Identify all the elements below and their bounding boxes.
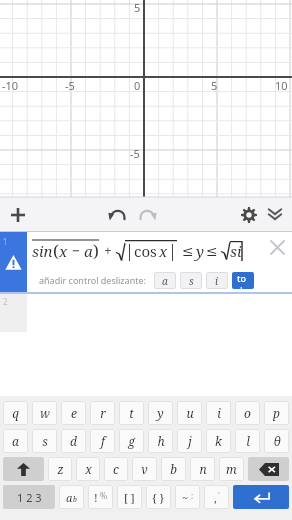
button[interactable]: n xyxy=(190,457,215,481)
button[interactable]: Close xyxy=(262,232,292,292)
staticText: -5 xyxy=(130,146,140,161)
staticText: 5 xyxy=(134,0,141,15)
button[interactable]: h xyxy=(148,429,173,453)
button[interactable]: Brackets xyxy=(117,485,142,509)
button[interactable]: c xyxy=(104,457,128,481)
staticText: s xyxy=(189,274,194,288)
button[interactable]: j xyxy=(177,429,202,453)
button[interactable]: x xyxy=(76,457,100,481)
button[interactable]: u xyxy=(177,401,202,425)
button[interactable]: Collapse xyxy=(263,203,287,227)
button[interactable]: d xyxy=(61,429,86,453)
staticText: | xyxy=(125,240,134,262)
button[interactable]: w xyxy=(32,401,57,425)
staticText: x xyxy=(159,241,168,261)
staticText: m xyxy=(226,461,237,477)
button[interactable]: q xyxy=(3,401,28,425)
staticText: { } xyxy=(152,490,165,505)
staticText: ) xyxy=(93,239,99,262)
button[interactable]: e xyxy=(61,401,86,425)
button[interactable]: Percent xyxy=(88,485,113,509)
staticText: e xyxy=(71,405,77,421)
staticText: -10 xyxy=(2,78,19,93)
staticText: si xyxy=(230,241,242,261)
button[interactable]: todo xyxy=(232,272,254,289)
staticText: 1 xyxy=(3,236,8,247)
button[interactable]: Add expression xyxy=(6,203,30,227)
staticText: 1 2 3 xyxy=(17,490,42,505)
staticText: [ ] xyxy=(124,490,135,505)
staticText: b xyxy=(73,495,77,505)
button[interactable]: Enter xyxy=(233,485,289,509)
staticText: θ xyxy=(273,433,281,449)
staticText: 2 xyxy=(3,296,8,307)
staticText: u xyxy=(186,405,194,421)
staticText: x xyxy=(85,461,92,477)
staticText: a xyxy=(66,490,73,505)
button[interactable]: t xyxy=(119,401,144,425)
button[interactable]: Shift xyxy=(3,457,44,481)
button[interactable]: f xyxy=(90,429,115,453)
button[interactable]: l xyxy=(235,429,260,453)
staticText: d xyxy=(70,433,77,449)
staticText: c xyxy=(113,461,119,477)
staticText: 5 xyxy=(211,78,218,93)
staticText: h xyxy=(157,433,165,449)
staticText: s xyxy=(42,433,48,449)
button[interactable]: Undo xyxy=(105,203,129,227)
staticText: j xyxy=(188,433,192,449)
button[interactable]: Subscript xyxy=(59,485,84,509)
staticText: r xyxy=(100,405,106,421)
staticText: a xyxy=(84,241,93,261)
staticText: a xyxy=(162,274,168,288)
staticText: − xyxy=(68,241,84,260)
staticText: v xyxy=(141,461,148,477)
staticText: w xyxy=(40,405,50,421)
staticText: o xyxy=(244,405,251,421)
button[interactable]: Comma xyxy=(204,485,229,509)
button[interactable]: Backspace xyxy=(248,457,289,481)
staticText: todo xyxy=(237,272,249,289)
button[interactable]: k xyxy=(206,429,231,453)
button[interactable]: s xyxy=(32,429,57,453)
staticText: ≤ xyxy=(182,243,194,259)
button[interactable]: Braces xyxy=(146,485,171,509)
staticText: b xyxy=(170,461,177,477)
staticText: y xyxy=(157,405,164,421)
staticText: l xyxy=(246,433,250,449)
button[interactable]: y xyxy=(148,401,173,425)
button[interactable]: v xyxy=(132,457,157,481)
staticText: a xyxy=(12,433,19,449)
button[interactable]: Redo xyxy=(136,203,160,227)
staticText: cos xyxy=(134,241,157,261)
button[interactable]: o xyxy=(235,401,260,425)
staticText: x xyxy=(59,241,68,261)
button[interactable]: 1 xyxy=(0,232,292,292)
staticText: : xyxy=(191,490,194,501)
staticText: -5 xyxy=(65,78,75,93)
button[interactable]: r xyxy=(90,401,115,425)
staticText: 10 xyxy=(275,78,288,93)
button[interactable]: Tilde xyxy=(175,485,200,509)
button[interactable]: z xyxy=(48,457,72,481)
staticText: t xyxy=(129,405,134,421)
button[interactable]: θ xyxy=(264,429,289,453)
button[interactable]: Settings xyxy=(237,203,261,227)
staticText: i xyxy=(215,274,219,288)
button[interactable]: s xyxy=(180,272,202,289)
staticText: sin xyxy=(32,241,53,261)
button[interactable]: m xyxy=(219,457,244,481)
button[interactable]: g xyxy=(119,429,144,453)
button[interactable]: a xyxy=(3,429,28,453)
staticText: ( xyxy=(53,239,59,262)
staticText: % xyxy=(100,490,108,501)
button[interactable]: p xyxy=(264,401,289,425)
staticText: q xyxy=(12,405,19,421)
button[interactable]: Numbers xyxy=(3,485,55,509)
staticText: y xyxy=(196,241,204,261)
button[interactable]: i xyxy=(206,401,231,425)
button[interactable]: i xyxy=(206,272,228,289)
button[interactable]: b xyxy=(161,457,186,481)
staticText: n xyxy=(199,461,207,477)
button[interactable]: a xyxy=(154,272,176,289)
